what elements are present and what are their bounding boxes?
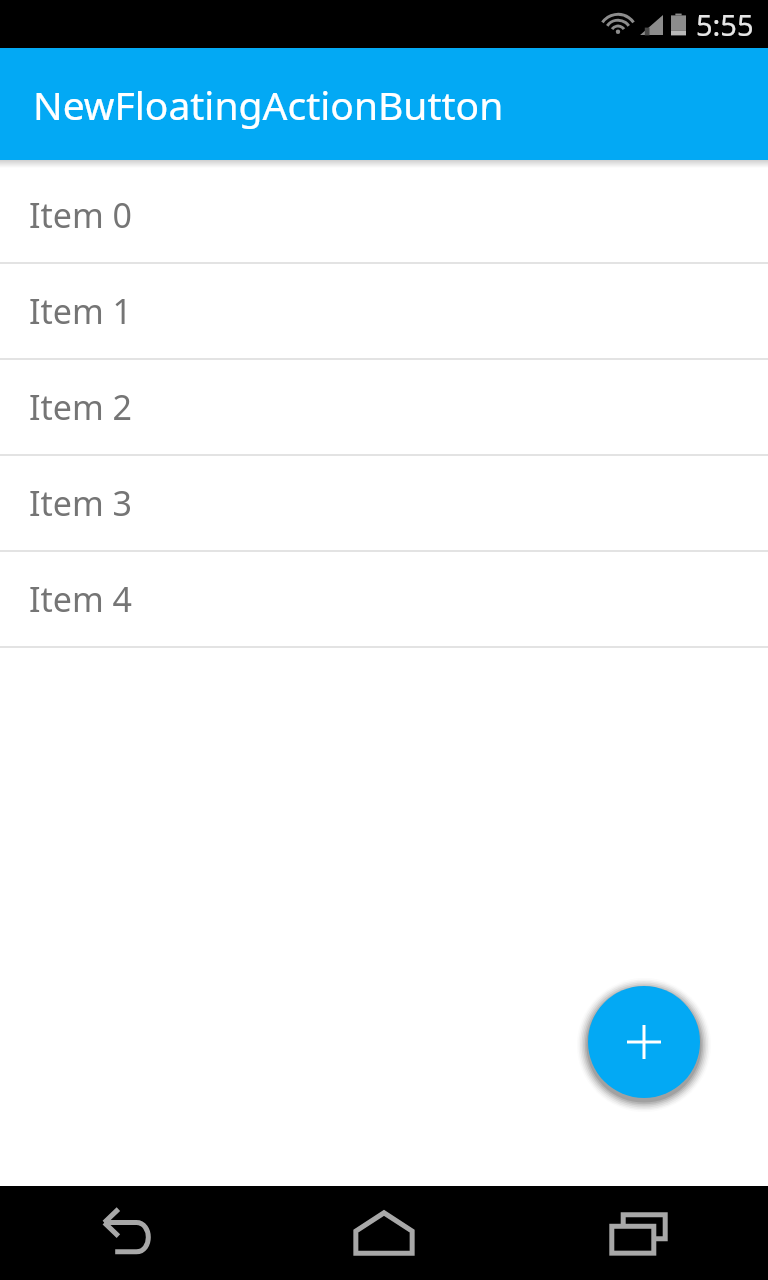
staticText: NewFloatingActionButton bbox=[33, 78, 504, 131]
button[interactable]: Item 3 bbox=[0, 456, 768, 550]
button[interactable]: Item 1 bbox=[0, 264, 768, 358]
staticText: Item 0 bbox=[29, 192, 133, 238]
button[interactable]: Item 4 bbox=[0, 552, 768, 646]
staticText: Item 4 bbox=[29, 576, 133, 622]
button[interactable]: Home bbox=[256, 1186, 512, 1280]
staticText: Item 3 bbox=[29, 480, 133, 526]
staticText: Item 1 bbox=[29, 288, 133, 334]
button[interactable]: Item 0 bbox=[0, 168, 768, 262]
button[interactable]: Back bbox=[0, 1186, 256, 1280]
button[interactable]: Add bbox=[588, 986, 700, 1098]
staticText: 5:55 bbox=[696, 5, 754, 44]
staticText: Item 2 bbox=[29, 384, 133, 430]
button[interactable]: Recents bbox=[512, 1186, 768, 1280]
button[interactable]: Item 2 bbox=[0, 360, 768, 454]
